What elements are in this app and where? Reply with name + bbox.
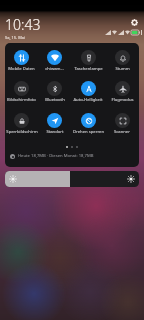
- staticText: Flugmodus: [111, 97, 134, 103]
- staticText: chiwam...: [45, 66, 64, 72]
- button[interactable]: Settings: [128, 16, 140, 28]
- staticText: Stumm: [115, 66, 130, 72]
- button[interactable]: Mobile Daten: [5, 50, 38, 72]
- button[interactable]: Brightness: [5, 171, 139, 187]
- staticText: Bluetooth: [45, 97, 65, 103]
- button[interactable]: Scanner: [105, 113, 139, 135]
- staticText: Taschenlampe: [74, 66, 103, 72]
- staticText: Scanner: [114, 129, 130, 135]
- staticText: Mobile Daten: [8, 66, 35, 72]
- staticText: Standort: [46, 129, 64, 135]
- button[interactable]: Standort: [38, 113, 71, 135]
- button[interactable]: Auto-Helligkeit: [71, 81, 105, 103]
- button[interactable]: Bluetooth: [38, 81, 71, 103]
- button[interactable]: Bildschirmfoto: [5, 81, 38, 103]
- staticText: Bildschirmfoto: [7, 97, 36, 103]
- button[interactable]: chiwam...: [38, 50, 71, 72]
- staticText: Sperrbildschirm: [6, 129, 38, 135]
- button[interactable]: Stumm: [105, 50, 139, 72]
- button[interactable]: Taschenlampe: [71, 50, 105, 72]
- staticText: Auto-Helligkeit: [73, 97, 103, 103]
- staticText: Heute 18,7MB · Diesen Monat: 18,7MB: [18, 153, 94, 159]
- button[interactable]: Drehen sperren: [71, 113, 105, 135]
- button[interactable]: Sperrbildschirm: [5, 113, 38, 135]
- staticText: Sa, 15. Mai: [5, 35, 26, 40]
- button[interactable]: Flugmodus: [105, 81, 139, 103]
- staticText: Drehen sperren: [73, 129, 104, 135]
- staticText: 10:43: [5, 15, 41, 34]
